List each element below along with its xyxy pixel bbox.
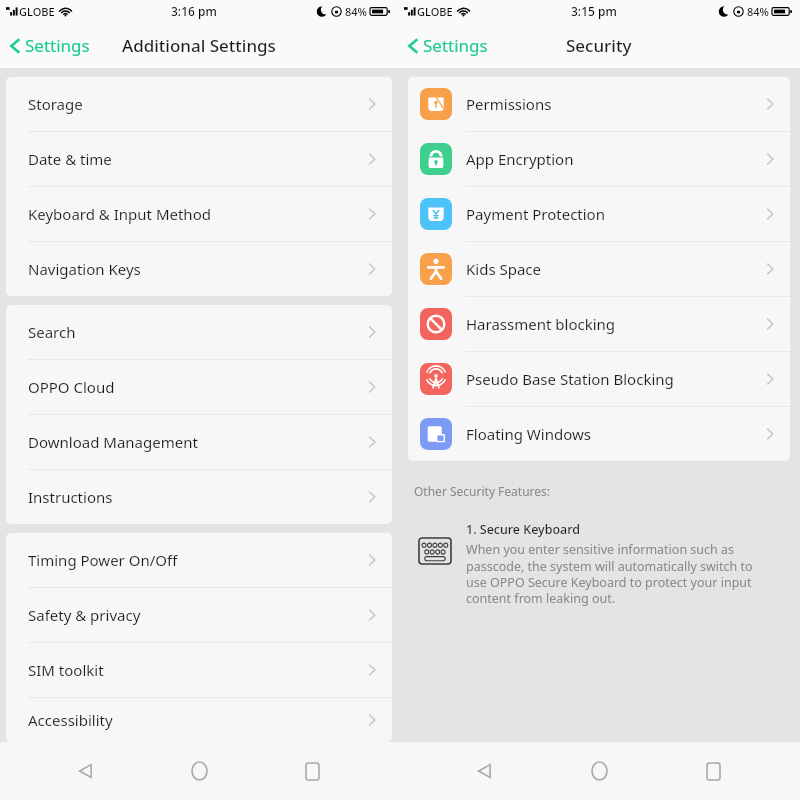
staticText: When you enter sensitive information suc… — [466, 541, 766, 606]
button[interactable]: Keyboard & Input Method — [6, 187, 392, 242]
button[interactable]: Home — [572, 744, 626, 798]
staticText: Payment Protection — [466, 204, 605, 224]
staticText: Settings — [25, 34, 90, 57]
staticText: Navigation Keys — [28, 259, 141, 279]
staticText: SIM toolkit — [28, 660, 104, 680]
staticText: Keyboard & Input Method — [28, 204, 211, 224]
staticText: Download Management — [28, 432, 198, 452]
staticText: 84% — [747, 4, 769, 19]
button[interactable]: Back — [59, 744, 113, 798]
button[interactable]: Safety & privacy — [6, 588, 392, 643]
button[interactable]: Download Management — [6, 415, 392, 470]
staticText: OPPO Cloud — [28, 377, 115, 397]
button[interactable]: Harassment blocking — [408, 297, 790, 352]
staticText: Date & time — [28, 149, 112, 169]
staticText: 1. Secure Keyboard — [466, 521, 581, 538]
staticText: 3:15 pm — [571, 3, 617, 19]
staticText: Instructions — [28, 487, 113, 507]
staticText: Timing Power On/Off — [28, 550, 178, 570]
button[interactable]: Search — [6, 305, 392, 360]
button[interactable]: Timing Power On/Off — [6, 533, 392, 588]
button[interactable]: SIM toolkit — [6, 643, 392, 698]
button[interactable]: Kids Space — [408, 242, 790, 297]
button[interactable]: OPPO Cloud — [6, 360, 392, 415]
button[interactable]: Home — [172, 744, 226, 798]
staticText: Harassment blocking — [466, 314, 616, 334]
staticText: Pseudo Base Station Blocking — [466, 369, 674, 389]
button[interactable]: Floating Windows — [408, 407, 790, 461]
staticText: Permissions — [466, 94, 552, 114]
staticText: GLOBE — [417, 4, 453, 19]
staticText: Settings — [423, 34, 488, 57]
staticText: GLOBE — [19, 4, 55, 19]
button[interactable]: Payment Protection — [408, 187, 790, 242]
button[interactable]: Permissions — [408, 77, 790, 132]
staticText: Storage — [28, 94, 83, 114]
button[interactable]: App Encryption — [408, 132, 790, 187]
staticText: Accessibility — [28, 710, 113, 730]
staticText: Safety & privacy — [28, 605, 141, 625]
staticText: Security — [566, 34, 632, 57]
button[interactable]: Settings — [0, 28, 100, 63]
button[interactable]: Accessibility — [6, 698, 392, 742]
button[interactable]: Settings — [398, 28, 498, 63]
button[interactable]: Navigation Keys — [6, 242, 392, 296]
button[interactable]: Date & time — [6, 132, 392, 187]
staticText: 3:16 pm — [171, 3, 217, 19]
staticText: Floating Windows — [466, 424, 591, 444]
button[interactable]: Recent apps — [686, 744, 740, 798]
button[interactable]: Back — [458, 744, 512, 798]
button[interactable]: Recent apps — [285, 744, 339, 798]
staticText: Kids Space — [466, 259, 542, 279]
button[interactable]: Instructions — [6, 470, 392, 524]
staticText: Additional Settings — [122, 34, 276, 57]
staticText: Search — [28, 322, 76, 342]
button[interactable]: Pseudo Base Station Blocking — [408, 352, 790, 407]
staticText: App Encryption — [466, 149, 574, 169]
staticText: Other Security Features: — [414, 483, 551, 499]
staticText: 84% — [345, 4, 367, 19]
button[interactable]: Storage — [6, 77, 392, 132]
